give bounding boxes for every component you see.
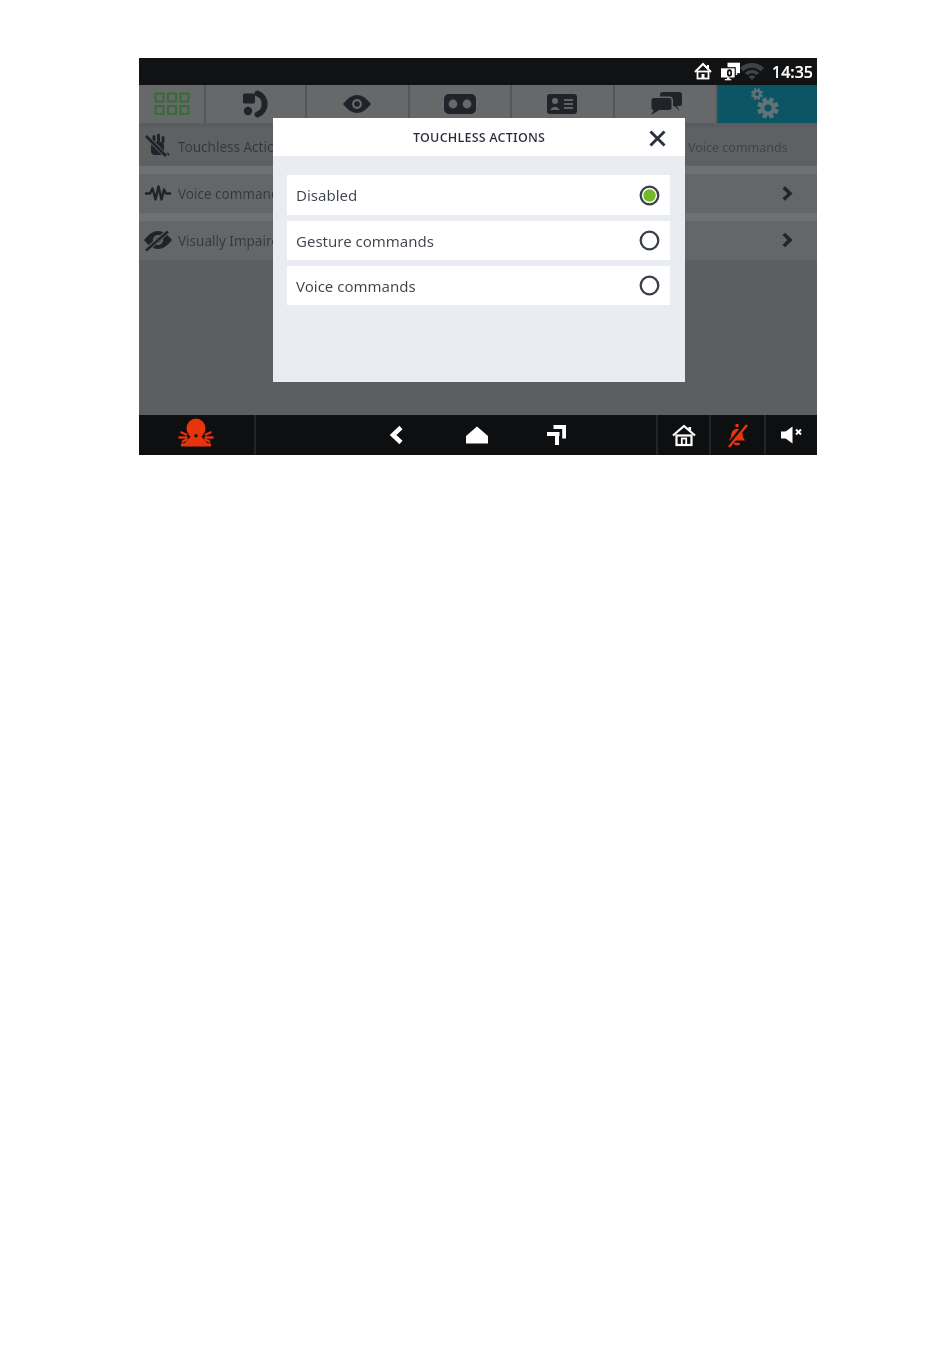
button[interactable]: Voice commands	[287, 266, 670, 305]
button[interactable]	[409, 85, 511, 123]
button[interactable]	[159, 415, 255, 455]
button[interactable]	[375, 415, 419, 455]
button[interactable]: Gesture commands	[287, 221, 670, 260]
button[interactable]	[614, 85, 717, 123]
staticText: 14:35	[772, 61, 813, 83]
button[interactable]	[511, 85, 614, 123]
staticText: Visually Impaired	[178, 232, 288, 250]
button[interactable]: Disabled	[287, 175, 670, 215]
button[interactable]: Voice commands	[139, 174, 817, 213]
button[interactable]	[657, 415, 710, 455]
button[interactable]	[205, 85, 306, 123]
staticText: TOUCHLESS ACTIONS	[413, 129, 546, 146]
staticText: Gesture commands	[296, 231, 434, 251]
button[interactable]	[455, 415, 499, 455]
staticText: Voice commands	[688, 139, 788, 156]
button[interactable]: Touchless Actions	[139, 127, 817, 167]
button[interactable]	[717, 85, 817, 123]
button[interactable]	[717, 85, 817, 123]
staticText: Voice commands	[178, 185, 286, 203]
staticText: Touchless Actions	[178, 138, 290, 156]
button[interactable]	[710, 415, 765, 455]
staticText: Disabled	[296, 185, 358, 205]
button[interactable]	[306, 85, 409, 123]
staticText: Voice commands	[296, 276, 416, 296]
button[interactable]: Visually Impaired	[139, 221, 817, 260]
button[interactable]	[139, 85, 205, 123]
button[interactable]	[765, 415, 817, 455]
button[interactable]	[536, 415, 580, 455]
button[interactable]	[641, 124, 673, 152]
